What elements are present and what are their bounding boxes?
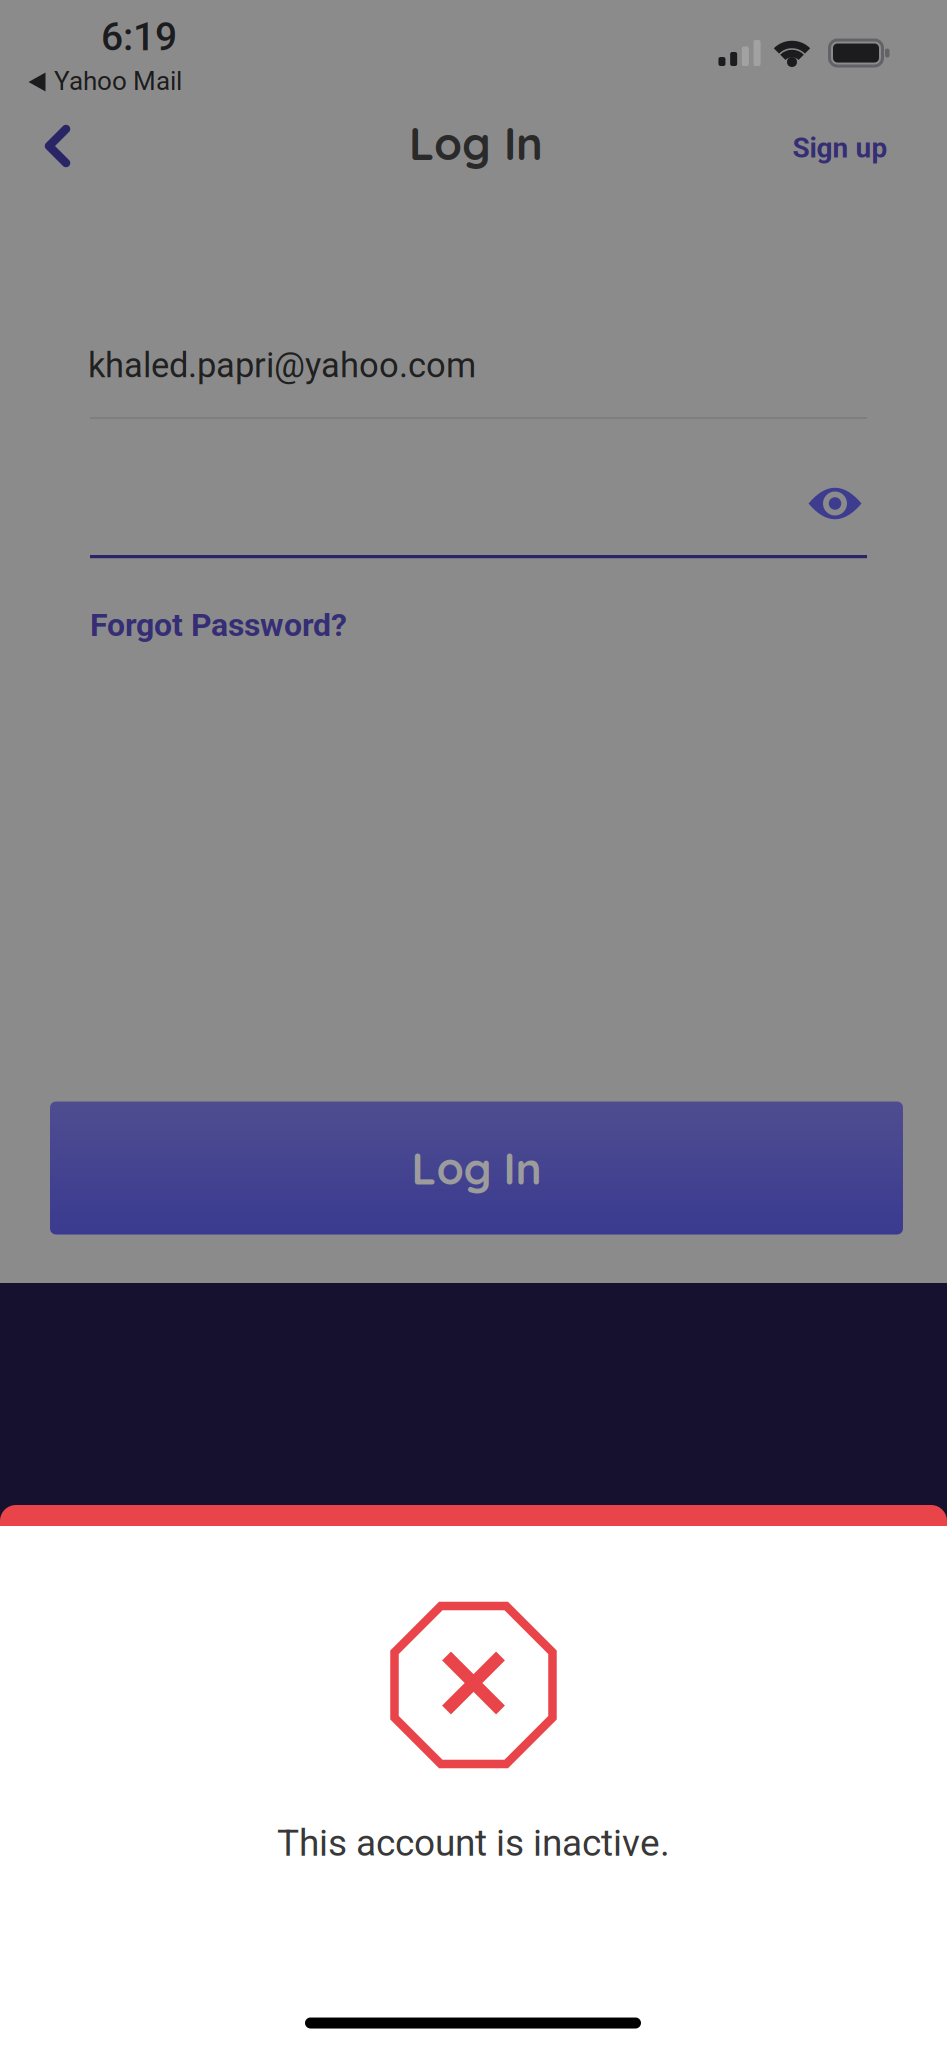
- staticText: Forgot Password?: [90, 606, 347, 644]
- button[interactable]: Sign up: [784, 124, 895, 172]
- staticText: Log In: [411, 1140, 541, 1195]
- staticText: Log In: [409, 115, 543, 171]
- staticText: khaled.papri@yahoo.com: [88, 345, 476, 386]
- staticText: Sign up: [792, 132, 887, 164]
- button[interactable]: Back: [37, 117, 78, 175]
- staticText: This account is inactive.: [277, 1821, 670, 1865]
- button[interactable]: Forgot Password?: [84, 600, 353, 650]
- button[interactable]: Log In: [50, 1101, 903, 1234]
- staticText: 6:19: [101, 14, 177, 60]
- staticText: Yahoo Mail: [54, 66, 182, 96]
- button[interactable]: Show password: [805, 481, 865, 525]
